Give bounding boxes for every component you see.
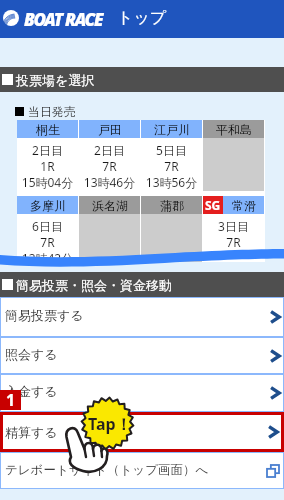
button[interactable]: 多摩川 (17, 196, 78, 262)
staticText: 浜名湖 (92, 198, 128, 213)
staticText: 6日目 (17, 218, 78, 234)
staticText: 平和島 (216, 122, 252, 137)
staticText: SG (205, 197, 221, 213)
button[interactable]: 入金する (0, 374, 284, 412)
button[interactable]: 戸田 (79, 120, 140, 191)
staticText: 入金する (5, 383, 58, 399)
staticText: 2日目 (79, 142, 140, 158)
staticText: 蒲郡 (160, 198, 184, 213)
other: Open (268, 310, 282, 324)
staticText: 照会する (5, 346, 58, 362)
button[interactable]: テレボートサイト（トップ画面）へ (0, 452, 284, 489)
staticText: 多摩川 (30, 198, 66, 213)
staticText: テレボートサイト（トップ画面）へ (5, 462, 209, 478)
other: Open (268, 386, 282, 400)
staticText: 1R (17, 158, 78, 174)
staticText: 精算する (5, 424, 58, 440)
button[interactable]: 桐生 (17, 120, 78, 191)
other: External link (267, 465, 279, 477)
staticText: 投票場を選択 (16, 72, 95, 88)
staticText: BOAT RACE (24, 8, 103, 31)
staticText: 1 (6, 389, 16, 409)
staticText: 5日目 (141, 142, 202, 158)
staticText: 7R (17, 234, 78, 250)
staticText: 7R (203, 234, 264, 250)
staticText: トップ (117, 8, 167, 28)
staticText: Tap！ (88, 413, 132, 435)
staticText: 3日目 (203, 218, 264, 234)
other: Open (266, 425, 280, 439)
staticText: 13時46分 (79, 174, 140, 190)
staticText: 15時04分 (17, 174, 78, 190)
staticText: 13時42分 (17, 250, 78, 262)
button[interactable]: SG (203, 196, 264, 262)
staticText: 13時56分 (141, 174, 202, 190)
staticText: 桐生 (36, 122, 60, 137)
other: Open (268, 349, 282, 363)
button[interactable]: 江戸川 (141, 120, 202, 191)
staticText: 7R (141, 158, 202, 174)
staticText: 簡易投票・照会・資金移動 (16, 277, 172, 293)
staticText: 江戸川 (154, 122, 190, 137)
staticText: 常滑 (232, 198, 256, 213)
staticText: 2日目 (17, 142, 78, 158)
button[interactable]: 簡易投票する (0, 297, 284, 337)
button[interactable]: 照会する (0, 337, 284, 374)
staticText: 簡易投票する (5, 307, 84, 323)
staticText: 戸田 (98, 122, 122, 137)
staticText: 7R (79, 158, 140, 174)
button[interactable]: 精算する (0, 412, 284, 452)
staticText: 当日発売 (28, 104, 76, 119)
